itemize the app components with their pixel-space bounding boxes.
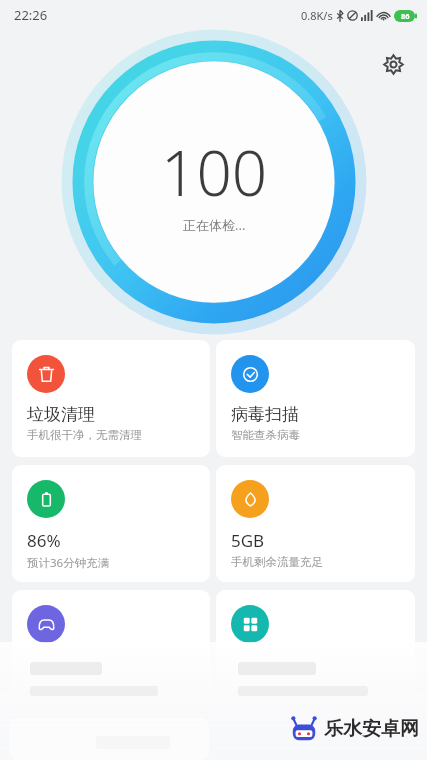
staticText: 乐水安卓网 [324,717,419,741]
staticText: 22:26 [14,6,48,24]
button[interactable]: 垃圾清理 [12,340,210,457]
button[interactable] [216,590,415,707]
staticText: 病毒扫描 [231,404,299,425]
button[interactable]: 5GB [216,465,415,582]
staticText: 86% [27,529,61,552]
staticText: 100 [161,130,268,214]
staticText: 垃圾清理 [27,404,95,425]
button[interactable]: 86% [12,465,210,582]
button[interactable] [12,590,210,707]
staticText: 0.8K/s [301,8,333,23]
staticText: 预计36分钟充满 [27,555,110,571]
button[interactable]: Settings [373,44,413,84]
staticText: 86 [401,11,410,21]
staticText: 正在体检... [183,216,246,234]
staticText: 智能查杀病毒 [231,428,300,442]
button[interactable]: 病毒扫描 [216,340,415,457]
staticText: 5GB [231,529,265,552]
button[interactable]: 100 [69,37,359,327]
staticText: 手机剩余流量充足 [231,555,323,569]
staticText: 手机很干净，无需清理 [27,428,142,442]
